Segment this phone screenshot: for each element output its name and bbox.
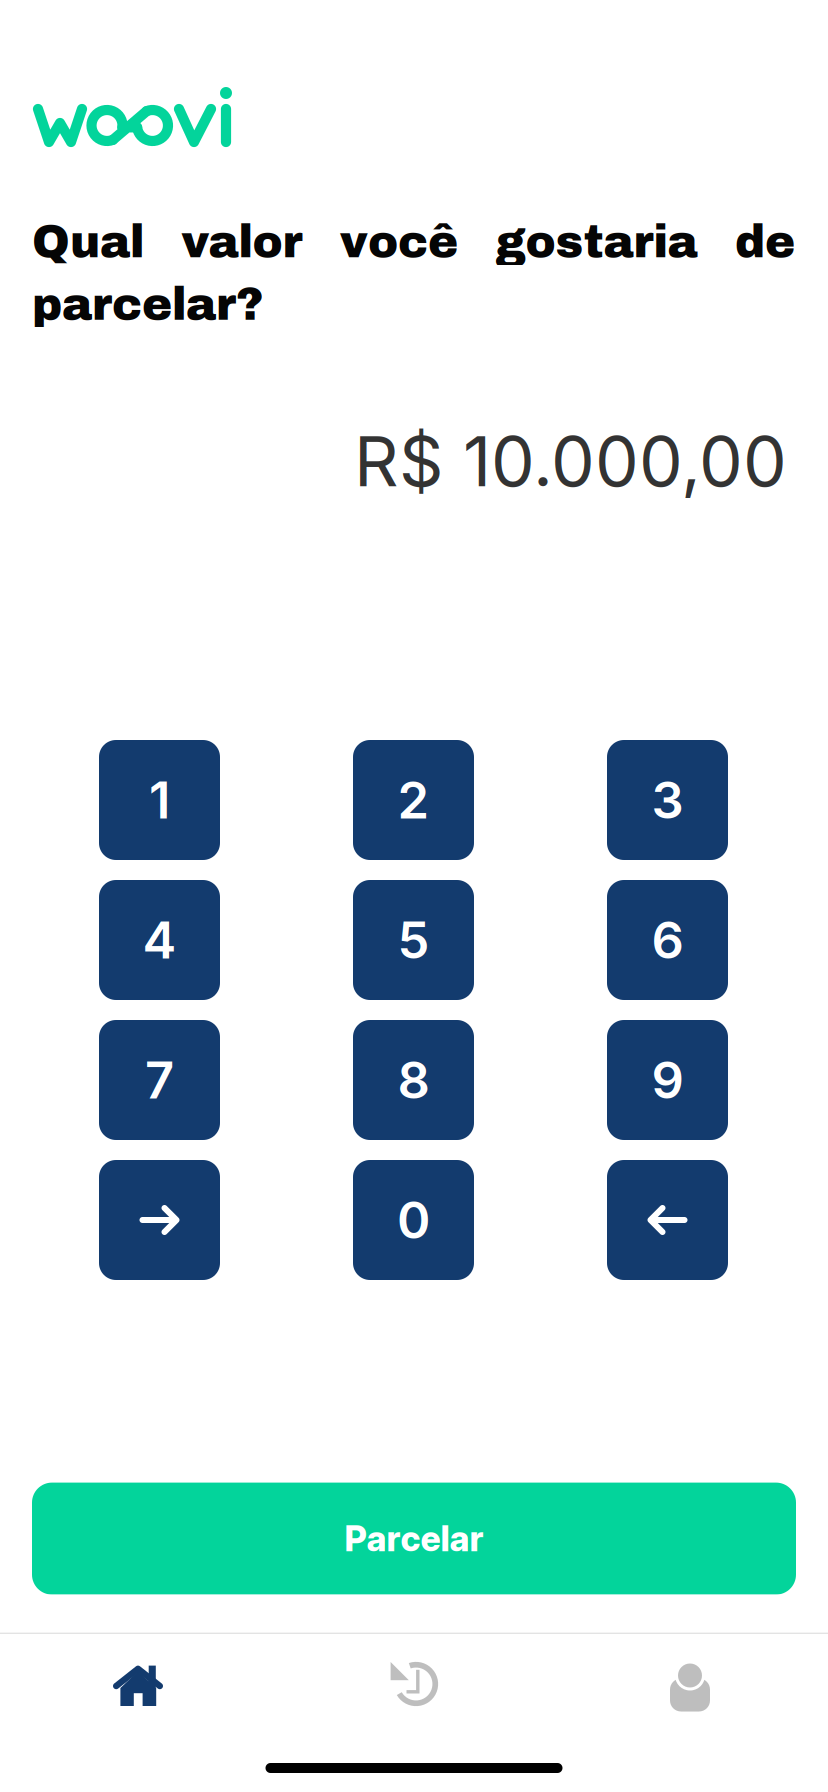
staticText: 6 [651,909,683,971]
button[interactable]: 0 [353,1160,474,1280]
button[interactable]: 1 [99,740,220,860]
staticText: 5 [397,909,429,971]
button[interactable]: 6 [607,880,728,1000]
staticText: 3 [651,769,683,831]
button[interactable]: Parcelar [32,1483,796,1595]
button[interactable]: History [276,1634,552,1730]
staticText: 9 [651,1049,683,1111]
staticText: 0 [397,1189,430,1251]
staticText: valor [181,217,302,267]
button[interactable]: Home [0,1634,276,1730]
staticText: 4 [142,909,176,971]
staticText: de [735,217,795,267]
button[interactable]: 5 [353,880,474,1000]
staticText: você [340,217,458,267]
button[interactable]: Profile [552,1634,828,1730]
staticText: parcelar? [32,280,264,329]
staticText: Qual [32,217,144,267]
staticText: 8 [397,1049,429,1111]
staticText: R$ 10.000,00 [354,419,787,503]
staticText: gostaria [495,217,697,267]
staticText: Parcelar [344,1518,483,1559]
button[interactable]: 9 [607,1020,728,1140]
button[interactable]: 3 [607,740,728,860]
button[interactable]: 7 [99,1020,220,1140]
button[interactable] [99,1160,220,1280]
button[interactable] [607,1160,728,1280]
staticText: 7 [145,1049,174,1111]
staticText: 1 [149,769,170,831]
button[interactable]: 8 [353,1020,474,1140]
staticText: 2 [397,769,429,831]
button[interactable]: 2 [353,740,474,860]
button[interactable]: 4 [99,880,220,1000]
